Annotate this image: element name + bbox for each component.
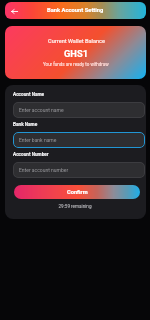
button[interactable]: Enter bank name <box>13 132 145 148</box>
button[interactable]: Back <box>8 5 20 17</box>
button[interactable]: Enter account number <box>13 162 145 178</box>
staticText: Confirm <box>67 189 88 196</box>
staticText: Current Wallet Balance <box>48 38 105 45</box>
button[interactable]: Back <box>5 2 146 19</box>
staticText: Enter bank name <box>19 137 57 143</box>
staticText: Bank Name <box>13 122 38 128</box>
button[interactable]: Enter account name <box>13 102 145 118</box>
button[interactable]: Confirm <box>14 185 140 199</box>
staticText: Your funds are ready to withdraw <box>43 62 109 67</box>
staticText: Account Number <box>13 152 49 158</box>
staticText: Enter account name <box>19 107 64 113</box>
staticText: Account Name <box>13 92 45 98</box>
staticText: 29:59 remaining <box>13 204 137 209</box>
staticText: Bank Account Setting <box>47 7 104 14</box>
staticText: Enter account number <box>19 167 69 173</box>
staticText: GHS1 <box>64 48 88 59</box>
